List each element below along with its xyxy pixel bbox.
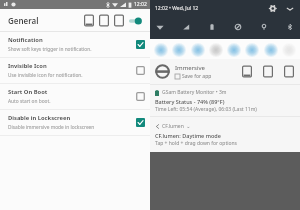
staticText: CF.lumen ⌄ [162,123,191,130]
staticText: Show soft keys trigger in notification. [8,46,92,53]
staticText: Save for app [182,73,212,80]
staticText: Disable in Lockscreen [8,114,71,122]
staticText: Time Left: 05:54 (Average), 06:03 (Last … [155,106,257,113]
staticText: Use invisible icon for notification. [8,72,83,79]
button[interactable]: Toggle [136,118,145,127]
staticText: Battery Status - 74% (89°F) [155,98,225,105]
button[interactable]: GSam Battery Monitor • 3m [150,85,300,116]
staticText: Tap + hold + drag down for options [155,140,238,147]
button[interactable]: Immersive [150,59,300,84]
button[interactable]: Nav bar mode [114,14,124,27]
button[interactable]: Start On Boot [0,84,150,109]
staticText: Disable immersive mode in lockscreen [8,124,95,131]
button[interactable]: Toggle [136,40,145,49]
button[interactable]: Status bar mode [263,65,273,78]
staticText: Immersive [175,64,205,72]
button[interactable]: Nav bar mode [284,65,294,78]
button[interactable]: Full screen mode [242,65,252,78]
button[interactable]: Full screen mode [84,14,94,27]
staticText: GSam Battery Monitor • 3m [162,89,227,96]
staticText: Invisible Icon [8,62,47,70]
button[interactable]: Toggle [136,92,145,101]
staticText: CF.lumen: Daytime mode [155,132,221,139]
button[interactable]: Invisible Icon [0,58,150,83]
button[interactable]: Settings [269,4,278,13]
button[interactable]: CF.lumen ⌄ [150,117,300,152]
staticText: 12:02 [134,1,147,8]
button[interactable]: Toggle [136,66,145,75]
button[interactable]: Status bar mode [99,14,109,27]
staticText: 12:02 • Wed, Jul 12 [155,5,199,12]
staticText: General [8,15,39,26]
button[interactable]: Disable in Lockscreen [0,110,150,135]
staticText: Auto start on boot. [8,98,51,105]
button[interactable]: Expand [286,5,294,13]
staticText: Notification [8,36,43,44]
button[interactable]: Notification [0,32,150,57]
staticText: Start On Boot [8,88,48,96]
button[interactable]: Enable immersive [129,16,142,26]
